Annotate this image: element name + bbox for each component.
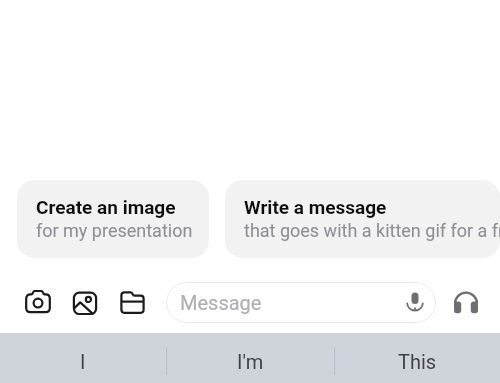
staticText: Create an image — [36, 196, 176, 218]
button[interactable]: Create an image — [17, 180, 209, 258]
staticText: I — [80, 350, 86, 373]
button[interactable]: Message — [166, 282, 436, 323]
button[interactable]: Voice input — [402, 290, 428, 316]
button[interactable]: This — [335, 333, 500, 383]
button[interactable]: Write a message — [225, 180, 500, 258]
staticText: This — [398, 350, 437, 373]
staticText: Write a message — [244, 196, 387, 218]
button[interactable]: Gallery — [70, 288, 100, 318]
staticText: that goes with a kitten gif for a friend — [244, 220, 500, 241]
button[interactable]: I'm — [167, 333, 334, 383]
staticText: for my presentation — [36, 220, 193, 241]
button[interactable]: Audio mode — [451, 288, 481, 318]
button[interactable]: I — [0, 333, 166, 383]
button[interactable]: Files — [117, 288, 147, 318]
button[interactable]: Camera — [23, 288, 53, 318]
staticText: I'm — [237, 350, 264, 373]
staticText: Message — [180, 291, 262, 314]
